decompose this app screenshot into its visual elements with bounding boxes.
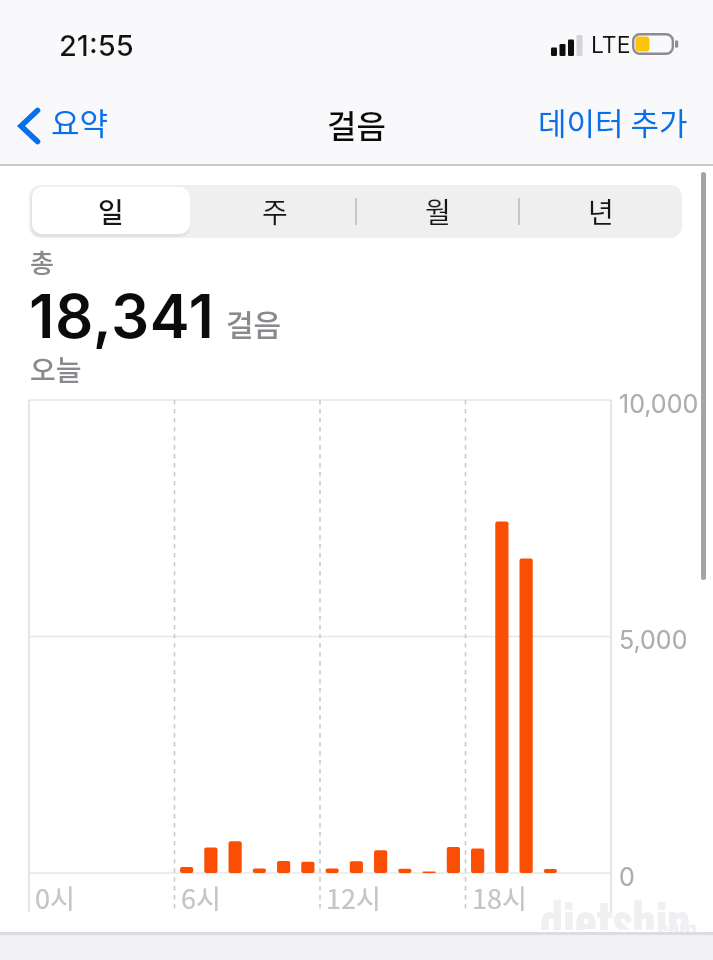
staticText: 주 [262,191,288,232]
button[interactable]: 데이터 추가 [528,92,698,151]
staticText: dietshin [540,882,691,930]
button[interactable]: 월 [356,185,519,238]
staticText: 6시 [181,878,221,917]
staticText: 18시 [472,878,527,917]
button[interactable]: 년 [519,185,682,238]
staticText: 일 [98,191,124,232]
staticText: 18,341 [29,280,215,353]
staticText: LTE [591,31,631,59]
staticText: 데이터 추가 [538,99,688,144]
staticText: 오늘 [30,349,82,390]
staticText: 년 [588,191,614,232]
staticText: 걸음 [226,301,282,344]
staticText: 요약 [51,99,109,144]
staticText: 0시 [35,878,75,917]
staticText: 총 [30,243,54,281]
staticText: 12시 [326,878,381,917]
staticText: 10,000 [619,389,699,419]
button[interactable]: 요약 [13,97,115,154]
button[interactable]: 주 [193,185,356,238]
button[interactable]: 일 [29,185,193,238]
staticText: 월 [425,191,451,232]
staticText: 걸음 [327,101,386,147]
staticText: 5,000 [619,625,688,655]
staticText: 0 [619,862,635,892]
staticText: 21:55 [59,28,134,63]
staticText: .com [653,909,697,948]
